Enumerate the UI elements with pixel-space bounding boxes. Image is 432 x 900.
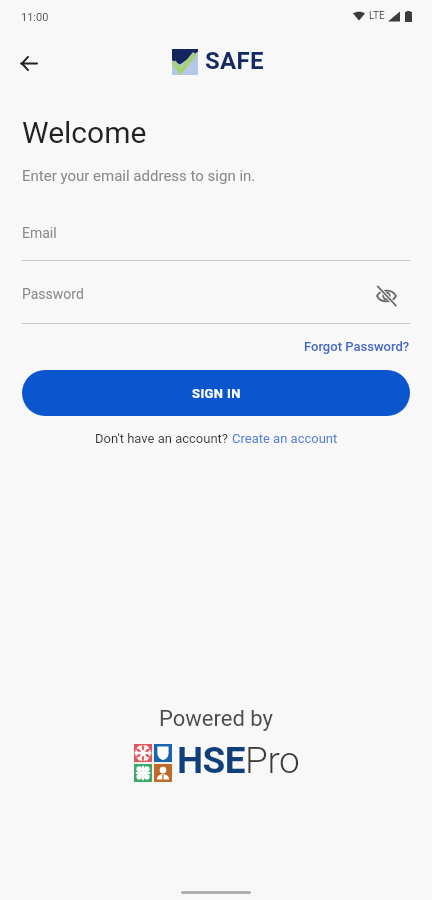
- staticText: HSE: [177, 739, 245, 782]
- staticText: Welcome: [22, 115, 147, 150]
- staticText: Don't have an account?: [95, 431, 232, 446]
- staticText: SAFE: [205, 47, 264, 75]
- button[interactable]: Forgot Password?: [298, 334, 416, 359]
- staticText: LTE: [369, 10, 385, 22]
- staticText: Email: [22, 225, 57, 241]
- staticText: Create an account: [232, 431, 338, 446]
- staticText: Enter your email address to sign in.: [22, 167, 256, 185]
- staticText: 11:00: [21, 11, 49, 24]
- button[interactable]: Create an account: [232, 428, 338, 449]
- staticText: Password: [22, 286, 84, 302]
- staticText: Forgot Password?: [304, 339, 410, 354]
- staticText: SIGN IN: [192, 386, 241, 401]
- button[interactable]: SIGN IN: [22, 370, 410, 416]
- button[interactable]: Show password: [375, 285, 397, 307]
- staticText: Pro: [245, 739, 300, 782]
- button[interactable]: Back: [9, 43, 49, 83]
- staticText: Powered by: [159, 706, 273, 732]
